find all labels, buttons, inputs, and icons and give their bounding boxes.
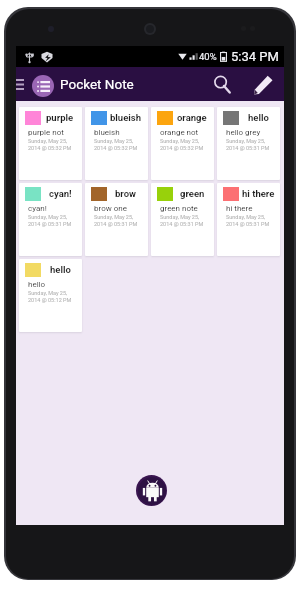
staticText: blueish — [110, 112, 142, 123]
staticText: Sunday, May 25, — [226, 214, 266, 220]
staticText: Sunday, May 25, — [226, 138, 266, 144]
staticText: 2014 @ 05:32 PM — [94, 145, 138, 151]
staticText: green note — [160, 204, 198, 213]
staticText: Pocket Note — [60, 76, 134, 92]
staticText: 40% — [199, 51, 217, 62]
staticText: blueish — [94, 128, 120, 137]
staticText: 2014 @ 05:32 PM — [28, 145, 72, 151]
staticText: hello grey — [226, 128, 261, 137]
staticText: 2014 @ 05:31 PM — [226, 145, 270, 151]
staticText: Sunday, May 25, — [94, 214, 134, 220]
staticText: Sunday, May 25, — [94, 138, 134, 144]
staticText: orange not — [160, 128, 199, 137]
staticText: purple not — [28, 128, 64, 137]
staticText: 5:34 PM — [231, 49, 279, 64]
staticText: Sunday, May 25, — [28, 290, 68, 296]
staticText: 2014 @ 05:31 PM — [226, 221, 270, 227]
staticText: hello — [248, 112, 269, 123]
staticText: purple — [46, 112, 74, 123]
staticText: 2014 @ 05:31 PM — [160, 221, 204, 227]
staticText: 2014 @ 05:31 PM — [94, 221, 138, 227]
staticText: Sunday, May 25, — [28, 214, 68, 220]
staticText: 2014 @ 05:12 PM — [28, 297, 72, 303]
staticText: Sunday, May 25, — [160, 214, 200, 220]
button[interactable]: New note — [247, 67, 279, 101]
staticText: Sunday, May 25, — [28, 138, 68, 144]
staticText: hello — [28, 280, 46, 289]
staticText: hello — [50, 264, 71, 275]
staticText: hi there — [242, 188, 275, 199]
button[interactable]: hello — [217, 107, 280, 180]
staticText: 2014 @ 05:31 PM — [28, 221, 72, 227]
button[interactable]: Open navigation drawer — [16, 67, 32, 101]
button[interactable]: brow — [85, 183, 148, 256]
staticText: brow — [115, 188, 137, 199]
button[interactable]: Home — [136, 475, 167, 506]
button[interactable]: hello — [19, 259, 82, 332]
button[interactable]: blueish — [85, 107, 148, 180]
staticText: cyan! — [49, 188, 72, 199]
staticText: Sunday, May 25, — [160, 138, 200, 144]
staticText: 2014 @ 05:32 PM — [160, 145, 204, 151]
staticText: green — [180, 188, 205, 199]
staticText: cyan! — [28, 204, 47, 213]
button[interactable]: hi there — [217, 183, 280, 256]
button[interactable]: cyan! — [19, 183, 82, 256]
button[interactable]: green — [151, 183, 214, 256]
staticText: hi there — [226, 204, 253, 213]
button[interactable]: purple — [19, 107, 82, 180]
staticText: brow one — [94, 204, 127, 213]
staticText: orange — [177, 112, 207, 123]
button[interactable]: Search — [206, 67, 238, 101]
button[interactable]: orange — [151, 107, 214, 180]
